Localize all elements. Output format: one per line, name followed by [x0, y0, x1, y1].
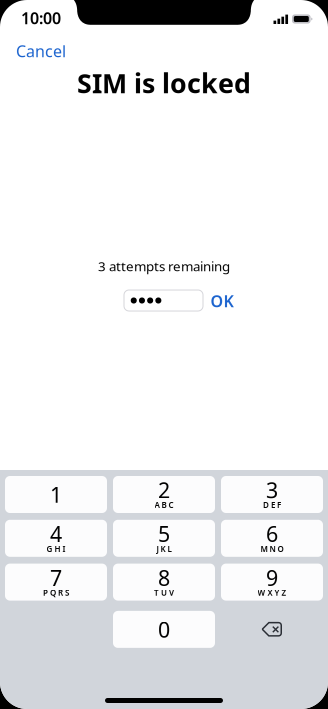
button[interactable]: 9	[221, 564, 323, 601]
staticText: 10:00	[21, 7, 61, 29]
button[interactable]: 1	[5, 476, 107, 513]
staticText: 3	[266, 476, 278, 504]
staticText: A B C	[154, 500, 173, 510]
button[interactable]: 5	[113, 520, 215, 557]
button[interactable]: 6	[221, 520, 323, 557]
staticText: 8	[158, 563, 170, 592]
button[interactable]: 7	[5, 564, 107, 601]
staticText: M N O	[260, 543, 283, 554]
staticText: 3 attempts remaining	[98, 257, 230, 275]
staticText: T U V	[154, 587, 174, 598]
staticText: 0	[158, 615, 170, 643]
staticText: 9	[266, 563, 278, 592]
button[interactable]: 2	[113, 476, 215, 513]
staticText: Cancel	[16, 40, 66, 62]
staticText: 1	[50, 480, 62, 509]
staticText: J K L	[156, 543, 171, 554]
button[interactable]: 8	[113, 564, 215, 601]
button[interactable]: OK	[209, 292, 235, 310]
staticText: P Q R S	[43, 587, 69, 598]
staticText: D E F	[263, 500, 281, 510]
staticText: G H I	[46, 543, 65, 554]
button[interactable]: 0	[113, 611, 215, 648]
button[interactable]: Delete	[221, 611, 323, 648]
staticText: 2	[158, 476, 170, 504]
staticText: OK	[210, 290, 233, 312]
staticText: 7	[50, 563, 62, 592]
button[interactable]: 4	[5, 520, 107, 557]
button[interactable]: Cancel	[0, 40, 76, 62]
button[interactable]: 3	[221, 476, 323, 513]
staticText: 5	[158, 520, 170, 548]
staticText: SIM is locked	[77, 65, 251, 101]
staticText: 4	[50, 520, 62, 548]
staticText: 6	[266, 520, 278, 548]
staticText: W X Y Z	[257, 587, 286, 598]
